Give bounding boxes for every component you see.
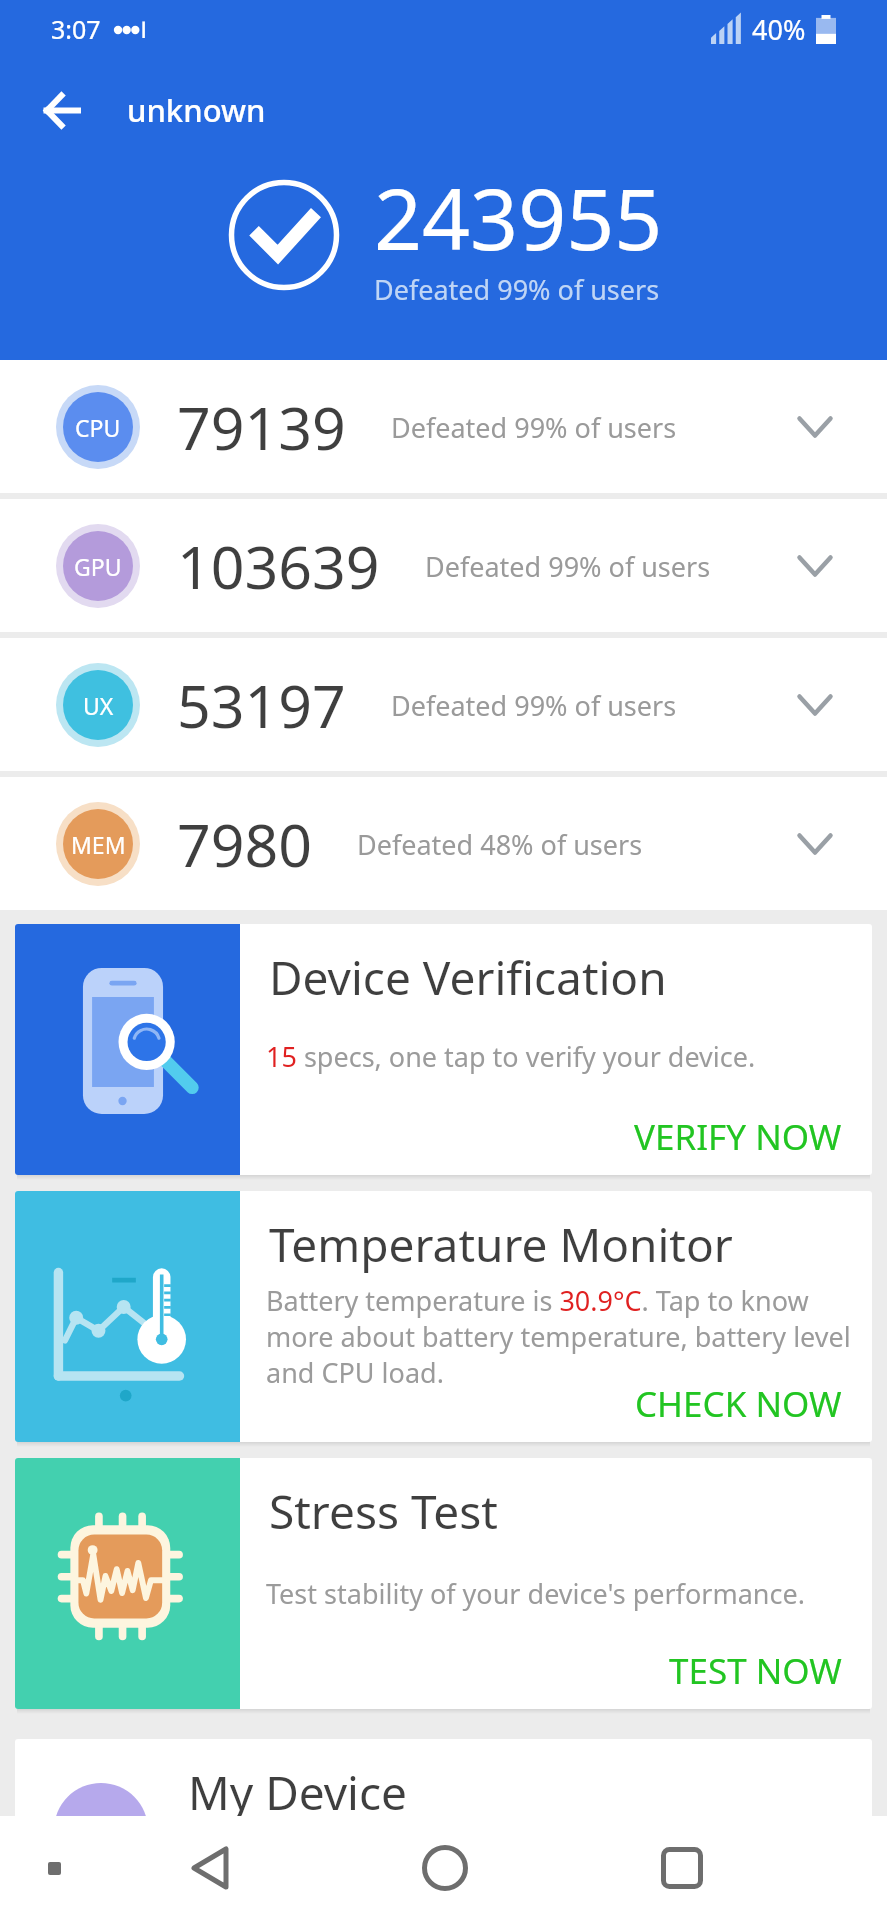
staticText: Defeated 99% of users	[391, 409, 677, 446]
staticText: GPU	[74, 551, 122, 582]
button[interactable]: Home	[405, 1828, 485, 1908]
button[interactable]: Temperature Monitor	[15, 1191, 872, 1442]
button[interactable]: Recent apps	[642, 1828, 722, 1908]
button[interactable]: Expand	[781, 671, 849, 739]
button[interactable]: CHECK NOW	[635, 1380, 842, 1428]
staticText: 53197	[177, 665, 346, 745]
button[interactable]: Back	[170, 1828, 250, 1908]
button[interactable]: Hide navigation bar	[28, 1842, 80, 1894]
staticText: Defeated 48% of users	[357, 826, 643, 863]
staticText: Defeated 99% of users	[374, 271, 660, 308]
button[interactable]: CPU	[0, 360, 887, 493]
staticText: UX	[83, 690, 114, 721]
button[interactable]: Stress Test	[15, 1458, 872, 1709]
button[interactable]: Expand	[781, 810, 849, 878]
button[interactable]: My Device	[15, 1739, 872, 1919]
button[interactable]: Expand	[781, 532, 849, 600]
staticText: My Device	[188, 1761, 408, 1824]
staticText: Defeated 99% of users	[425, 548, 711, 585]
staticText: TEST NOW	[669, 1647, 842, 1695]
staticText: 3:07	[51, 12, 101, 46]
staticText: 103639	[177, 526, 380, 606]
staticText: Test stability of your device's performa…	[266, 1575, 805, 1612]
staticText: Stress Test	[269, 1480, 498, 1543]
staticText: MEM	[71, 829, 126, 860]
staticText: VERIFY NOW	[634, 1113, 842, 1161]
button[interactable]: Expand	[781, 393, 849, 461]
staticText: CHECK NOW	[635, 1380, 842, 1428]
button[interactable]: UX	[0, 638, 887, 771]
staticText: Temperature Monitor	[269, 1213, 733, 1276]
staticText: 79139	[177, 387, 346, 467]
button[interactable]: GPU	[0, 499, 887, 632]
staticText: Battery temperature is 30.9°C. Tap to kn…	[266, 1282, 862, 1391]
staticText: 15 specs, one tap to verify your device.	[266, 1038, 756, 1075]
button[interactable]: MEM	[0, 777, 887, 910]
staticText: CPU	[75, 412, 121, 443]
button[interactable]: Device Verification	[15, 924, 872, 1175]
staticText: 40%	[752, 11, 806, 48]
staticText: Defeated 99% of users	[391, 687, 677, 724]
staticText: Device Verification	[269, 946, 667, 1009]
button[interactable]: VERIFY NOW	[634, 1113, 842, 1161]
button[interactable]: TEST NOW	[669, 1647, 842, 1695]
staticText: 7980	[177, 804, 312, 884]
staticText: unknown	[127, 89, 266, 131]
button[interactable]: Back	[26, 80, 96, 140]
staticText: 243955	[374, 160, 663, 274]
